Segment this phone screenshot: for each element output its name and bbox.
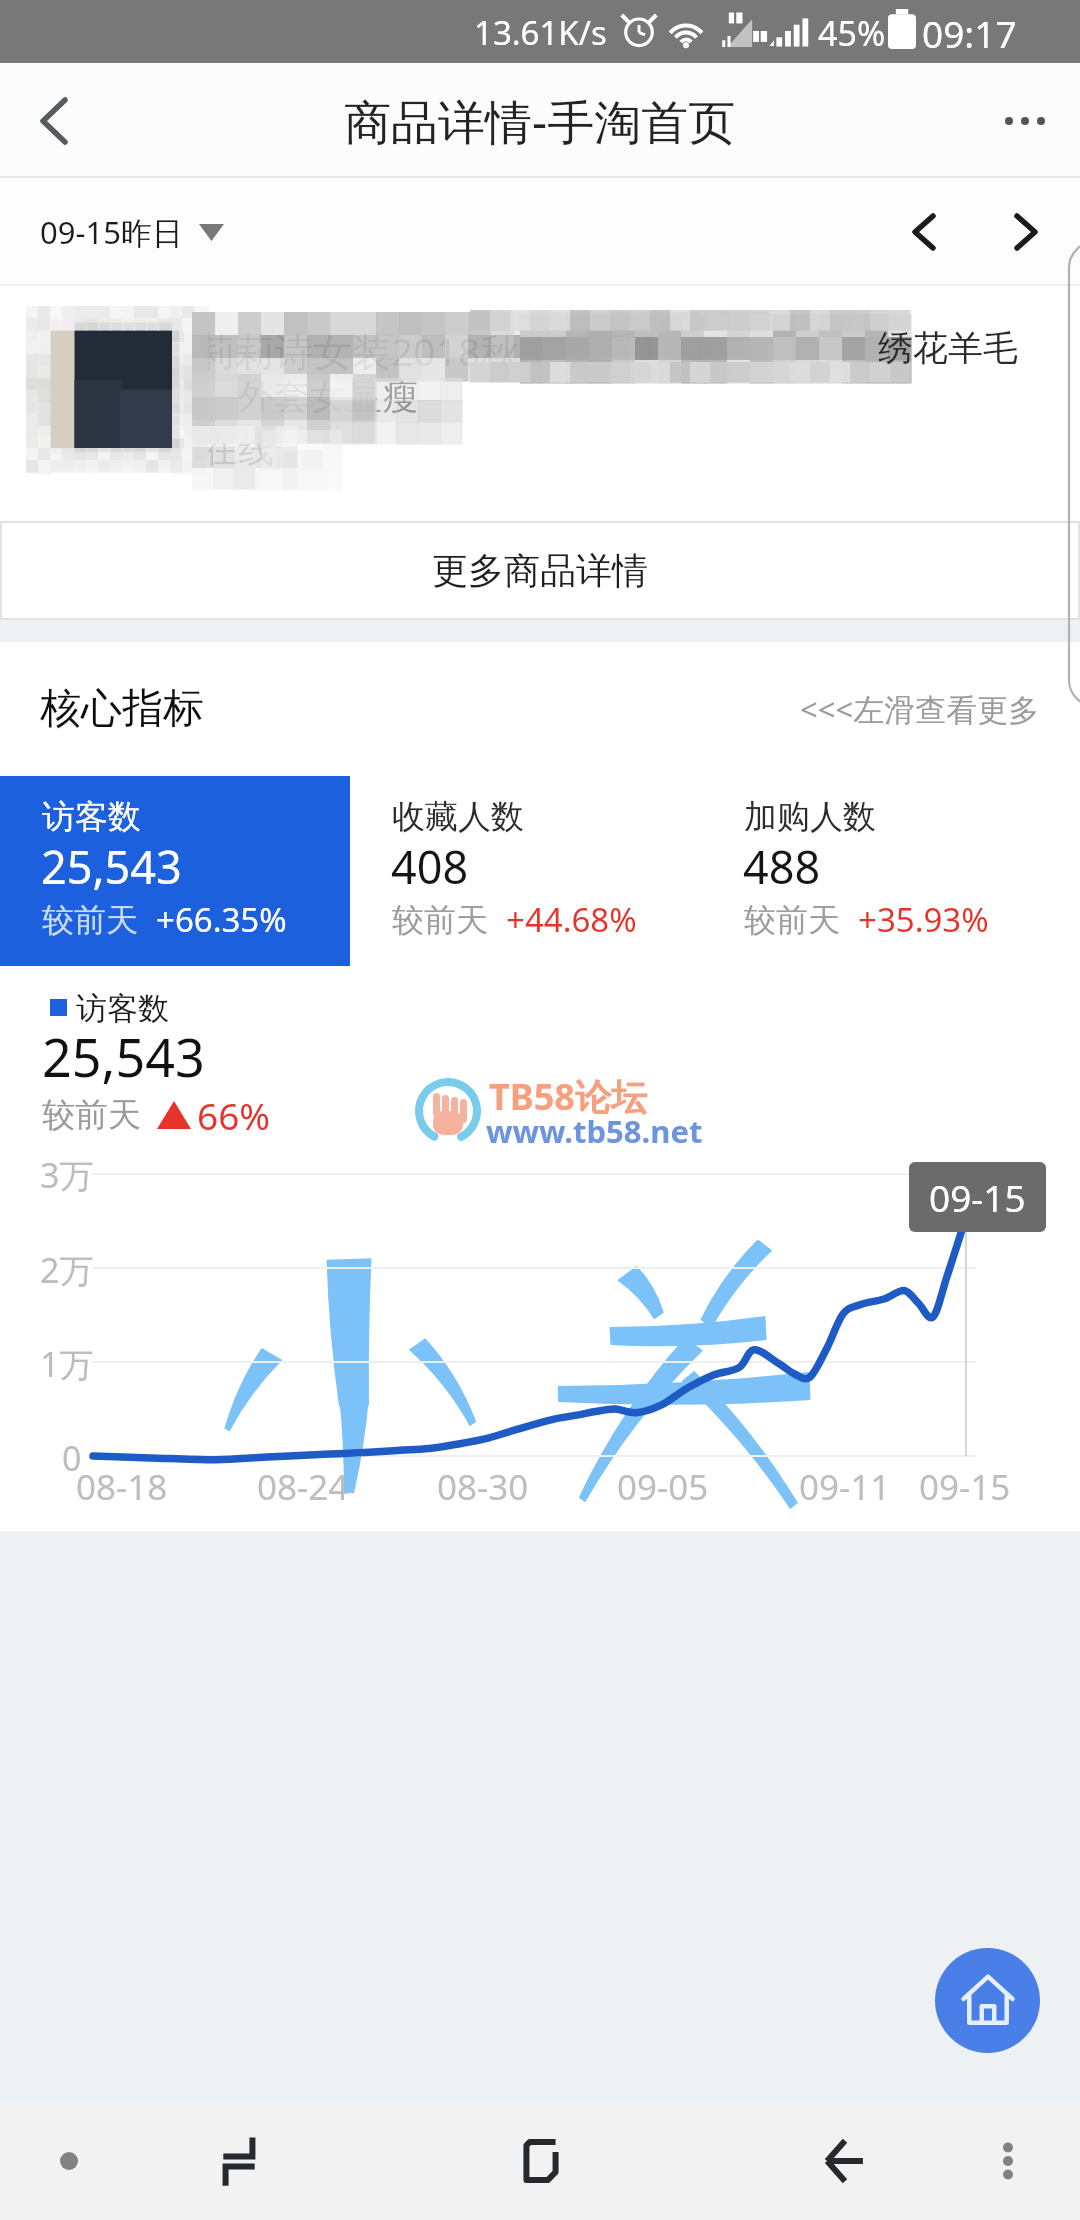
staticText: 488: [743, 836, 821, 897]
staticText: 0: [62, 1435, 82, 1481]
staticText: 66%: [197, 1090, 271, 1140]
staticText: 收藏人数: [392, 796, 524, 838]
staticText: 13.61K/s: [474, 10, 607, 55]
staticText: 较前天: [42, 1094, 141, 1136]
staticText: 绣花羊毛: [878, 326, 1018, 370]
staticText: 访客数: [76, 989, 169, 1028]
staticText: 25,543: [41, 836, 182, 897]
staticText: 08-30: [437, 1463, 529, 1511]
staticText: 09-15: [929, 1172, 1026, 1222]
button[interactable]: Next day: [984, 178, 1068, 286]
button[interactable]: Menu: [948, 2102, 1068, 2220]
button[interactable]: 09-15昨日: [40, 178, 224, 286]
staticText: 较前天: [392, 900, 488, 940]
button[interactable]: 访客数: [0, 776, 350, 966]
button[interactable]: Back: [0, 63, 108, 178]
staticText: 加购人数: [744, 796, 876, 838]
staticText: 在线: [202, 427, 274, 472]
staticText: 09-11: [799, 1463, 891, 1511]
staticText: 核心指标: [40, 683, 204, 735]
staticText: 较前天: [744, 900, 840, 940]
button[interactable]: More options: [970, 63, 1080, 178]
button[interactable]: 加购人数: [702, 776, 1080, 966]
button[interactable]: Back: [785, 2102, 905, 2220]
staticText: 408: [391, 836, 469, 897]
staticText: 08-24: [257, 1463, 349, 1511]
button[interactable]: <<<左滑查看更多: [800, 688, 1040, 730]
button[interactable]: Split screen: [179, 2102, 299, 2220]
staticText: 09-05: [617, 1463, 709, 1511]
staticText: 访客数: [42, 796, 141, 838]
staticText: 08-18: [76, 1463, 168, 1511]
staticText: 3万: [40, 1152, 94, 1198]
button[interactable]: Recents: [481, 2102, 601, 2220]
staticText: 商品详情-手淘首页: [344, 89, 736, 153]
staticText: +35.93%: [858, 897, 989, 942]
button[interactable]: 更多商品详情: [0, 521, 1080, 620]
staticText: 更多商品详情: [432, 548, 648, 593]
button[interactable]: Previous day: [882, 178, 966, 286]
button[interactable]: Home: [935, 1948, 1040, 2053]
button[interactable]: 收藏人数: [350, 776, 702, 966]
staticText: 外套女显瘦: [238, 374, 418, 419]
staticText: +66.35%: [156, 897, 287, 942]
staticText: 25,543: [42, 1021, 205, 1092]
staticText: 09-15: [919, 1463, 1011, 1511]
staticText: www.tb58.net: [486, 1110, 703, 1152]
staticText: TB58论坛: [489, 1072, 647, 1121]
staticText: 09-15昨日: [40, 211, 183, 253]
staticText: 莉莉诗女装2018秋冬新款韩版: [196, 324, 715, 377]
staticText: 2万: [40, 1247, 94, 1293]
staticText: 较前天: [42, 900, 138, 940]
staticText: 45%: [818, 10, 886, 56]
button[interactable]: Assistant: [9, 2102, 129, 2220]
staticText: 09:17: [922, 8, 1017, 58]
staticText: 1万: [40, 1341, 94, 1387]
staticText: +44.68%: [506, 897, 637, 942]
